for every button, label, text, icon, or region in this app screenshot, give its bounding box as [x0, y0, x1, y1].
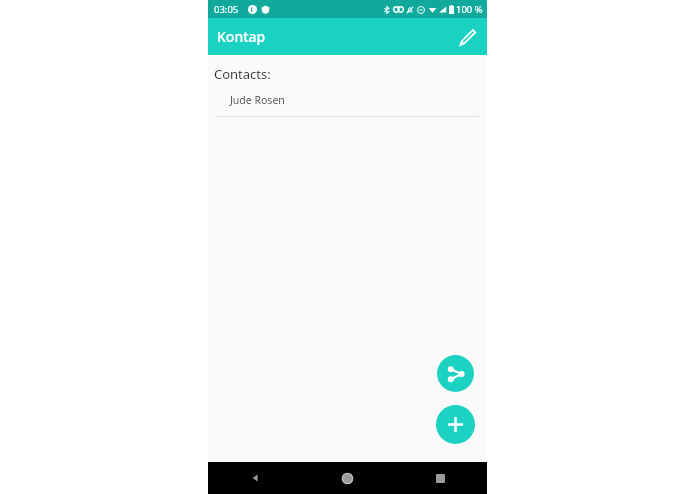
- button[interactable]: Home: [301, 462, 394, 494]
- button[interactable]: Share: [437, 355, 474, 392]
- button[interactable]: Recent apps: [394, 462, 487, 494]
- staticText: 100 %: [456, 3, 483, 16]
- button[interactable]: Back: [208, 462, 301, 494]
- staticText: 03:05: [214, 3, 239, 16]
- staticText: Kontap: [217, 27, 266, 46]
- staticText: Jude Rosen: [230, 93, 285, 107]
- button[interactable]: Jude Rosen: [216, 91, 479, 117]
- staticText: Contacts:: [214, 65, 271, 83]
- button[interactable]: Edit: [453, 23, 481, 51]
- button[interactable]: Add contact: [436, 405, 475, 444]
